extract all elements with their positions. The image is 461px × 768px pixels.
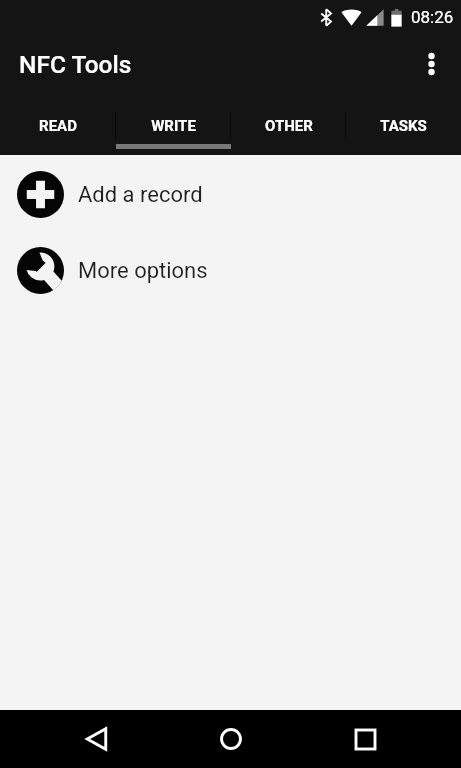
staticText: More options: [78, 258, 208, 284]
staticText: OTHER: [265, 117, 313, 135]
staticText: Add a record: [78, 182, 203, 208]
staticText: WRITE: [151, 117, 196, 135]
button[interactable]: READ: [0, 100, 116, 155]
button[interactable]: TASKS: [346, 100, 461, 155]
button[interactable]: Add a record: [0, 171, 461, 218]
button[interactable]: Recent apps: [339, 713, 391, 765]
button[interactable]: WRITE: [116, 100, 231, 155]
button[interactable]: Back: [70, 713, 122, 765]
staticText: READ: [39, 117, 77, 135]
staticText: 08:26: [411, 7, 454, 27]
staticText: TASKS: [380, 117, 427, 135]
button[interactable]: More options: [407, 40, 455, 88]
staticText: NFC Tools: [19, 50, 132, 79]
button[interactable]: More options: [0, 247, 461, 294]
button[interactable]: Home: [205, 713, 257, 765]
button[interactable]: OTHER: [231, 100, 346, 155]
